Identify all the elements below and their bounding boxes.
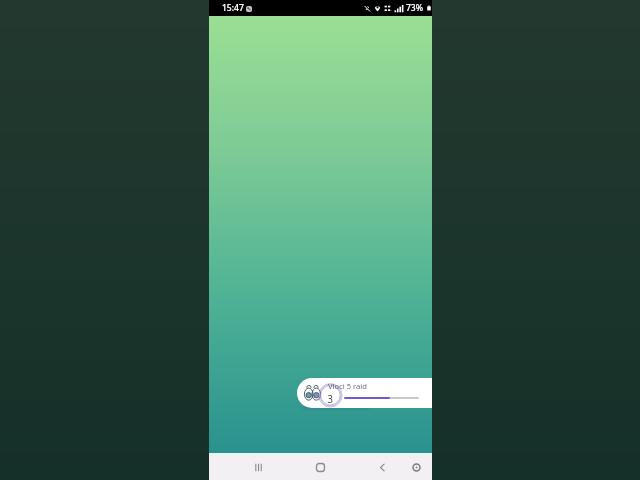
button[interactable]: Raid watchers <box>297 378 432 408</box>
other: Raid watchers <box>297 378 432 408</box>
button[interactable]: Home <box>307 454 333 480</box>
staticText: 73% <box>406 2 423 14</box>
staticText: 15:47 <box>222 2 244 14</box>
staticText: Vloci 5 raid <box>328 381 367 391</box>
button[interactable]: Back <box>369 454 395 480</box>
staticText: 3 <box>320 392 340 406</box>
button[interactable]: Stop recording <box>403 454 429 480</box>
button[interactable]: Recents <box>245 454 271 480</box>
